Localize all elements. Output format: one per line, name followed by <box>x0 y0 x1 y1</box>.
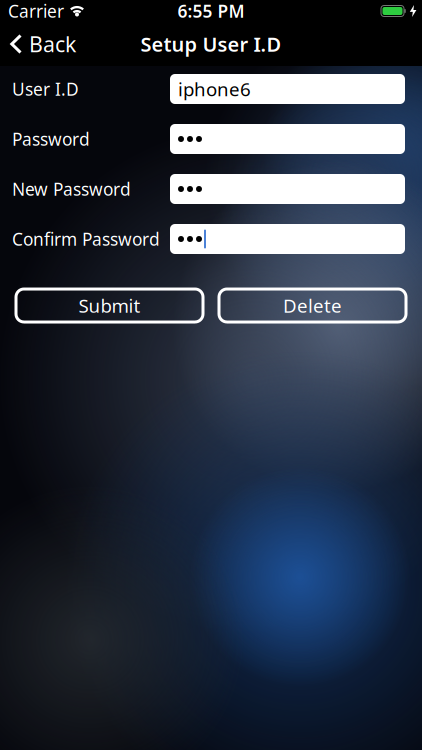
staticText: Back <box>29 30 76 58</box>
staticText: New Password <box>12 177 131 200</box>
button[interactable]: Back <box>0 22 76 66</box>
staticText: Setup User I.D <box>140 31 281 57</box>
button[interactable]: Delete <box>219 289 406 322</box>
button[interactable]: Confirm Password <box>170 224 405 254</box>
button[interactable]: New Password <box>170 174 405 204</box>
button[interactable]: Password <box>170 124 405 154</box>
staticText: Carrier <box>8 0 64 22</box>
staticText: Delete <box>283 293 342 318</box>
staticText: Password <box>12 127 90 150</box>
staticText: Submit <box>78 293 140 318</box>
staticText: Confirm Password <box>12 227 160 250</box>
button[interactable]: Submit <box>16 289 203 322</box>
button[interactable]: User I.D <box>170 74 405 104</box>
staticText: User I.D <box>12 77 79 100</box>
staticText: iphone6 <box>178 77 251 101</box>
staticText: 6:55 PM <box>177 0 244 22</box>
